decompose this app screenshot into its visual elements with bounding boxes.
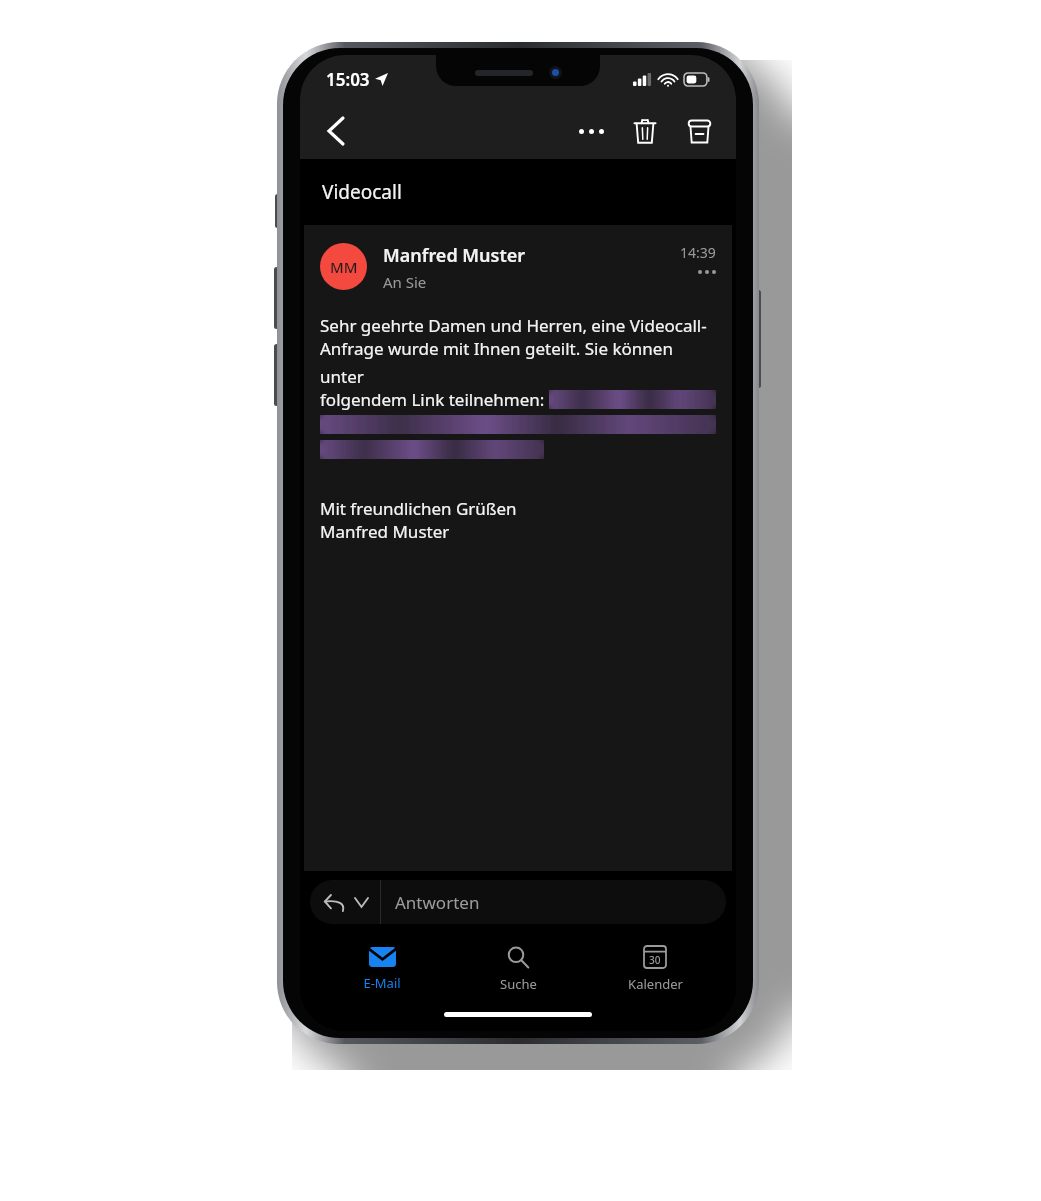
staticText: MM xyxy=(330,257,358,277)
button[interactable]: 30 xyxy=(600,933,710,1005)
staticText: An Sie xyxy=(383,272,427,292)
button[interactable]: E-Mail xyxy=(327,933,437,1005)
staticText: 30 xyxy=(649,953,661,967)
button[interactable]: Back xyxy=(312,107,360,155)
staticText: E-Mail xyxy=(363,974,401,992)
staticText: Manfred Muster xyxy=(320,520,450,543)
staticText: Kalender xyxy=(628,975,683,993)
button[interactable]: Suche xyxy=(463,933,573,1005)
staticText: 15:03 xyxy=(326,68,370,91)
button[interactable]: Antworten xyxy=(310,880,726,924)
staticText: Sehr geehrte Damen und Herren, eine Vide… xyxy=(320,314,707,337)
staticText: Antworten xyxy=(395,891,480,914)
staticText: Manfred Muster xyxy=(383,243,526,268)
staticText: Anfrage wurde mit Ihnen geteilt. Sie kön… xyxy=(320,337,716,388)
staticText: Videocall xyxy=(322,179,402,205)
staticText: Mit freundlichen Grüßen xyxy=(320,497,517,520)
button[interactable]: More options xyxy=(568,108,614,154)
button[interactable]: MM xyxy=(320,243,716,292)
staticText: 14:39 xyxy=(680,243,716,262)
staticText: folgendem Link teilnehmen: xyxy=(320,388,549,411)
staticText: Suche xyxy=(500,975,537,993)
button[interactable]: Delete xyxy=(622,108,668,154)
button[interactable]: Archive xyxy=(676,108,722,154)
button[interactable]: Videocall xyxy=(300,159,736,225)
